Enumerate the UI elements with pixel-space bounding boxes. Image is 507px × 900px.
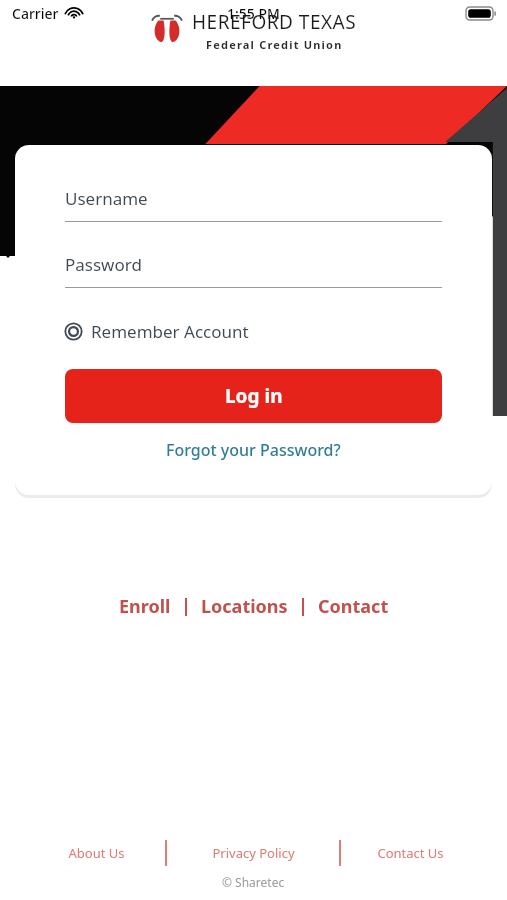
button[interactable]: Log in [65, 369, 442, 423]
staticText: Locations [201, 594, 288, 619]
staticText: Forgot your Password? [166, 439, 341, 461]
staticText: Federal Credit Union [206, 37, 343, 52]
button[interactable]: Privacy Policy [167, 838, 339, 868]
button[interactable]: About Us [28, 838, 165, 868]
button[interactable]: Contact Us [341, 838, 479, 868]
staticText: Username [65, 187, 148, 210]
button[interactable]: Locations [187, 590, 302, 623]
staticText: 1:55 PM [227, 4, 280, 23]
button[interactable]: Forgot your Password? [65, 437, 442, 463]
button[interactable]: Remember Account [65, 316, 249, 347]
staticText: Contact Us [377, 844, 444, 862]
staticText: Password [65, 253, 142, 276]
button[interactable]: Password [65, 253, 442, 288]
staticText: Enroll [119, 594, 171, 619]
staticText: Remember Account [91, 320, 249, 343]
staticText: © Sharetec [222, 874, 285, 890]
staticText: Contact [318, 594, 389, 619]
button[interactable]: Contact [304, 590, 403, 623]
staticText: Log in [225, 383, 283, 409]
staticText: HEREFORD TEXAS [192, 9, 357, 35]
staticText: About Us [68, 844, 125, 862]
staticText: Privacy Policy [212, 844, 295, 862]
button[interactable]: Enroll [105, 590, 185, 623]
staticText: Carrier [12, 4, 59, 23]
button[interactable]: Username [65, 187, 442, 222]
